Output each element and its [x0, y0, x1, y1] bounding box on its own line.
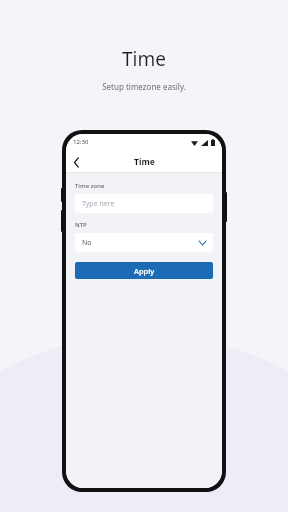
staticText: Time	[122, 46, 166, 72]
button[interactable]: Apply	[75, 262, 213, 279]
staticText: Time	[134, 156, 155, 168]
button[interactable]: Back	[66, 152, 86, 172]
button[interactable]: No	[75, 233, 213, 252]
staticText: Setup timezone easily.	[102, 81, 186, 92]
staticText: Type here	[82, 199, 115, 209]
staticText: Time zone	[75, 182, 105, 190]
staticText: 12:30	[73, 138, 89, 146]
staticText: NTP	[75, 221, 87, 229]
button[interactable]: Type here	[75, 194, 213, 213]
staticText: No	[82, 238, 92, 248]
staticText: Apply	[134, 266, 155, 276]
